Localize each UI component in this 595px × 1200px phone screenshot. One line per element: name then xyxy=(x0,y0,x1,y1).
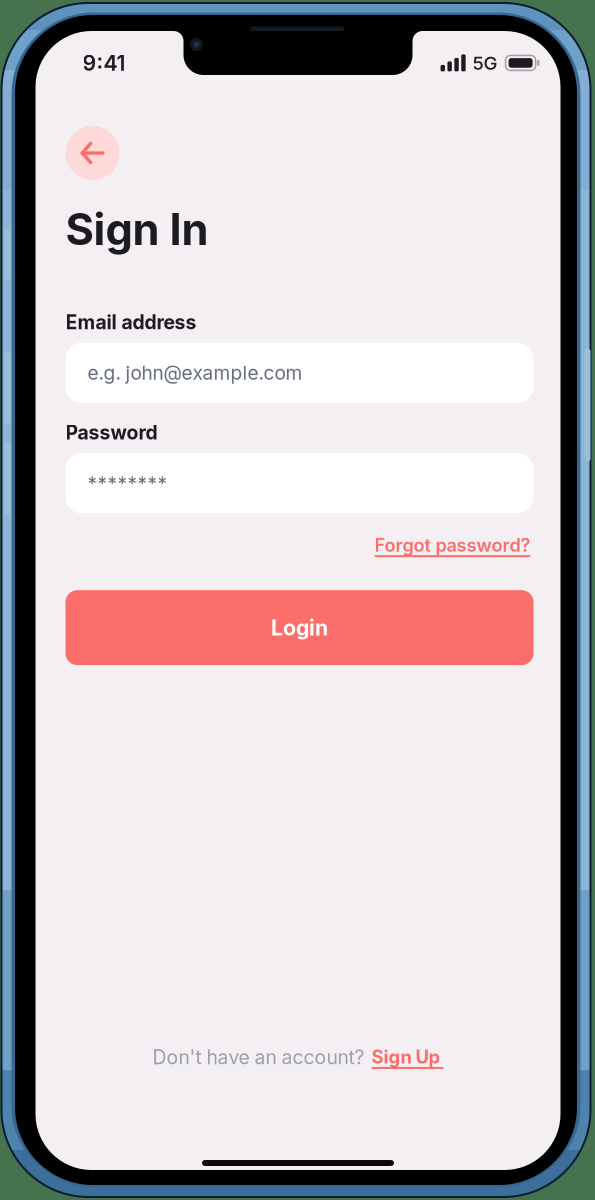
button[interactable]: Back xyxy=(65,126,119,180)
staticText: ******** xyxy=(87,472,167,495)
staticText: Don't have an account? xyxy=(152,1046,364,1069)
staticText: Sign In xyxy=(65,203,208,255)
staticText: 5G xyxy=(473,52,498,74)
staticText: e.g. john@example.com xyxy=(87,361,302,384)
button[interactable]: Sign Up xyxy=(371,1046,443,1069)
staticText: Forgot password? xyxy=(374,534,530,556)
staticText: Sign Up xyxy=(371,1046,440,1068)
staticText: 9:41 xyxy=(82,50,125,76)
staticText: Email address xyxy=(65,310,196,334)
staticText: Password xyxy=(65,421,157,444)
button[interactable]: Forgot password? xyxy=(374,534,530,557)
button[interactable]: Login xyxy=(65,590,533,665)
staticText: Login xyxy=(271,615,328,640)
